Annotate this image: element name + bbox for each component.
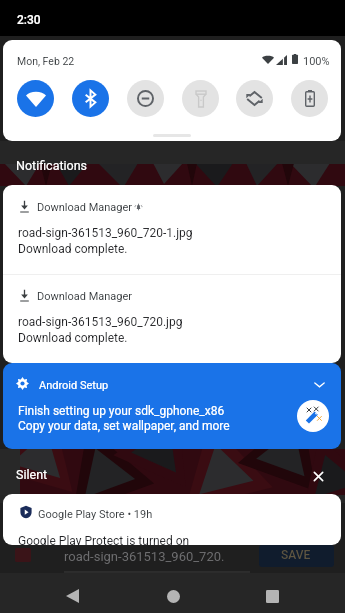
staticText: Mon, Feb 22 (17, 55, 75, 67)
button[interactable]: Auto rotate (236, 80, 273, 117)
staticText: 100% (303, 55, 330, 68)
button[interactable]: Flashlight (182, 80, 219, 117)
staticText: road-sign-361513_960_720-1.jpg (18, 226, 193, 240)
button[interactable]: Bluetooth (72, 80, 109, 117)
staticText: Silent (16, 467, 48, 482)
button[interactable]: Battery Saver (291, 80, 328, 117)
staticText: road-sign-361513_960_720. (64, 549, 225, 564)
staticText: Download Manager (37, 201, 133, 214)
button[interactable]: Do Not Disturb (127, 80, 164, 117)
button[interactable]: Android Setup (3, 363, 341, 449)
staticText: Download complete. (18, 331, 128, 345)
staticText: Download complete. (18, 242, 128, 256)
button[interactable]: Google Play Store • 19h (3, 494, 341, 545)
button[interactable]: Wi-Fi (17, 80, 54, 117)
button[interactable]: Download Manager (3, 185, 341, 274)
staticText: 2:30 (17, 13, 41, 27)
button[interactable]: Recent apps (257, 581, 287, 611)
staticText: SAVE (281, 548, 311, 562)
button[interactable]: Back (57, 581, 87, 611)
staticText: Google Play Store • 19h (38, 508, 153, 521)
button[interactable]: Download Manager (3, 274, 341, 363)
staticText: Notifications (16, 158, 88, 173)
button[interactable]: Home (158, 581, 188, 611)
staticText: Finish setting up your sdk_gphone_x86 (18, 404, 225, 418)
staticText: road-sign-361513_960_720.jpg (18, 315, 183, 329)
staticText: Copy your data, set wallpaper, and more (18, 419, 230, 433)
button[interactable]: Clear silent notifications (308, 466, 328, 486)
button[interactable]: Start setup (297, 400, 329, 432)
staticText: Download Manager (37, 290, 133, 303)
staticText: Google Play Protect is turned on (18, 534, 190, 545)
staticText: Android Setup (39, 379, 109, 392)
button[interactable]: Expand (308, 373, 330, 395)
